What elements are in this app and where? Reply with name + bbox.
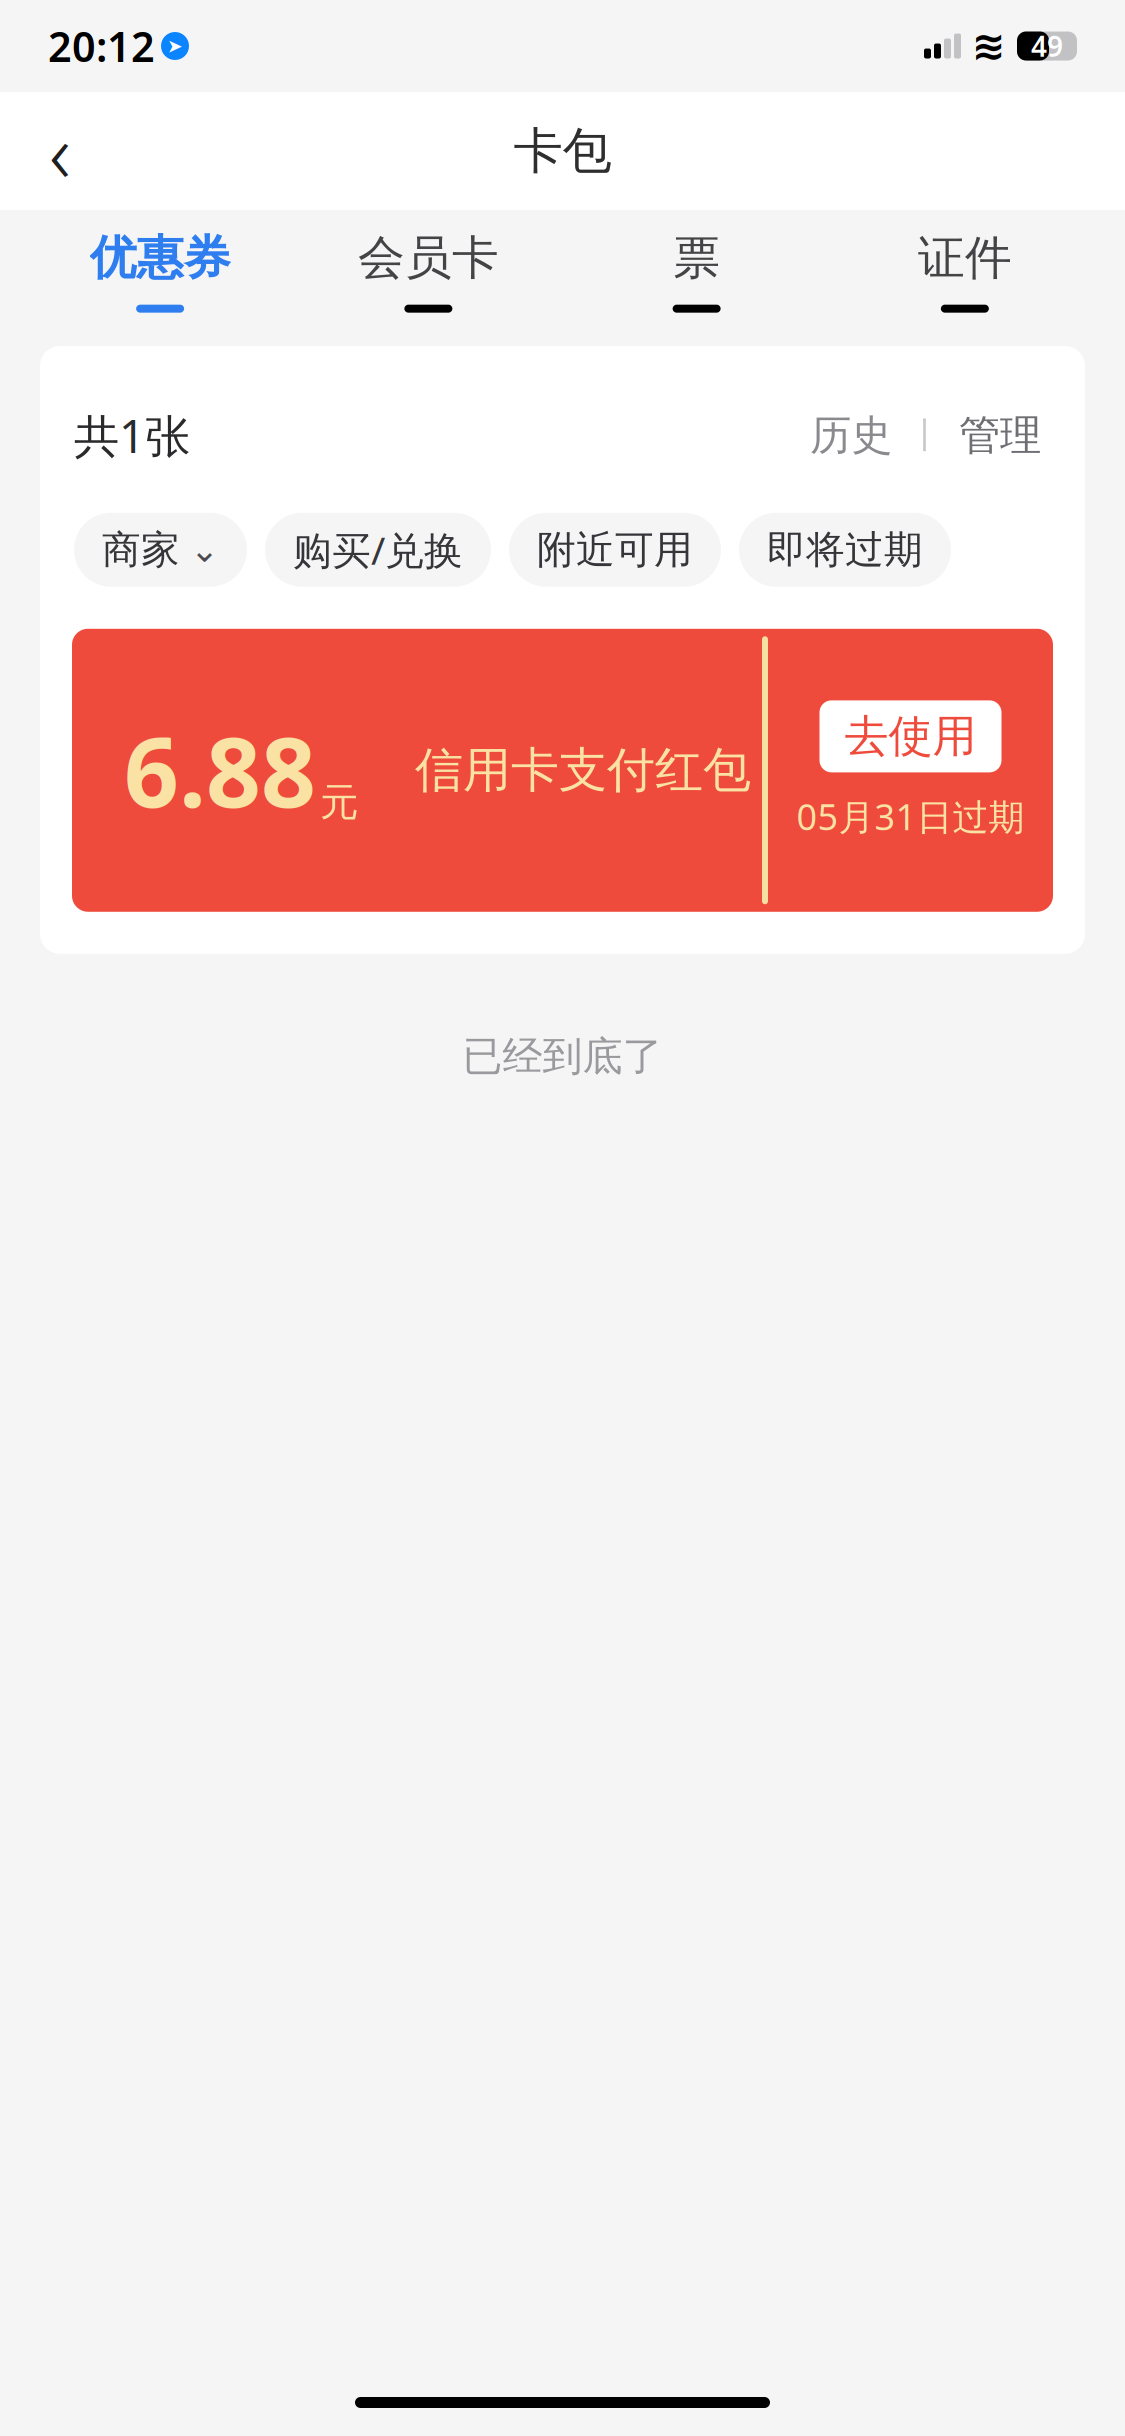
staticText: 20:12 (48, 19, 155, 73)
staticText: 历史 (810, 410, 892, 461)
button[interactable]: 即将过期 (739, 513, 951, 587)
staticText: 会员卡 (358, 229, 499, 287)
staticText: 附近可用 (537, 526, 693, 573)
staticText: 49 (1031, 27, 1063, 65)
staticText: 05月31日过期 (796, 792, 1024, 840)
button[interactable]: 管理 (949, 402, 1051, 469)
staticText: 共1张 (74, 405, 190, 465)
staticText: ⌄ (190, 530, 219, 569)
staticText: 丨 (908, 414, 943, 457)
staticText: 商家 (102, 526, 180, 573)
staticText: ≋ (972, 23, 1006, 69)
button[interactable]: 返回 (14, 105, 106, 197)
staticText: 已经到底了 (462, 1032, 662, 1081)
staticText: 即将过期 (767, 526, 923, 573)
staticText: 信用卡支付红包 (415, 741, 751, 800)
staticText: 证件 (918, 229, 1012, 287)
button[interactable]: 会员卡 (294, 210, 562, 332)
staticText: 票 (673, 229, 720, 287)
staticText: ➤ (167, 35, 183, 57)
staticText: 优惠券 (90, 229, 231, 287)
button[interactable]: 历史 (800, 402, 902, 469)
staticText: 去使用 (844, 709, 976, 763)
staticText: 6.88 (124, 706, 316, 834)
button[interactable]: 优惠券 (26, 210, 294, 332)
staticText: 管理 (959, 410, 1041, 461)
button[interactable]: 证件 (831, 210, 1099, 332)
staticText: ‹ (49, 96, 71, 206)
staticText: 元 (320, 778, 359, 826)
button[interactable]: 票 (562, 210, 831, 332)
button[interactable]: 附近可用 (509, 513, 721, 587)
staticText: 卡包 (513, 121, 611, 181)
staticText: 购买/兑换 (293, 524, 463, 575)
button[interactable]: 商家 (74, 513, 247, 587)
button[interactable]: 购买/兑换 (265, 513, 491, 587)
button[interactable]: 6.88 (72, 629, 1053, 912)
